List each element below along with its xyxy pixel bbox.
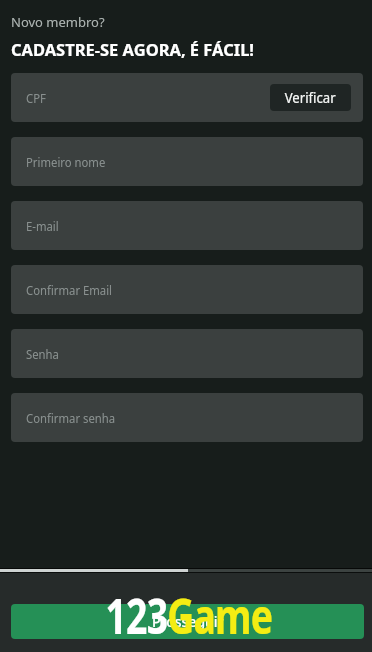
button[interactable]: CPF — [11, 73, 363, 122]
staticText: Novo membro? — [11, 13, 105, 31]
staticText: Prosseguir — [152, 612, 224, 631]
button[interactable]: Confirmar senha — [11, 393, 363, 442]
button[interactable]: Verificar — [270, 84, 351, 111]
staticText: Confirmar senha — [26, 409, 116, 427]
button[interactable]: Prosseguir — [11, 604, 364, 639]
staticText: Verificar — [285, 88, 336, 107]
other: 123Game logo — [84, 584, 294, 648]
button[interactable]: Confirmar Email — [11, 265, 363, 314]
button[interactable]: Senha — [11, 329, 363, 378]
button[interactable]: Primeiro nome — [11, 137, 363, 186]
staticText: Confirmar Email — [26, 281, 112, 299]
staticText: Primeiro nome — [26, 153, 106, 171]
staticText: E-mail — [26, 217, 59, 235]
staticText: CADASTRE-SE AGORA, É FÁCIL! — [11, 39, 254, 61]
staticText: CPF — [26, 89, 46, 107]
staticText: Senha — [26, 345, 59, 363]
button[interactable]: E-mail — [11, 201, 363, 250]
staticText: 123Game — [105, 583, 272, 649]
